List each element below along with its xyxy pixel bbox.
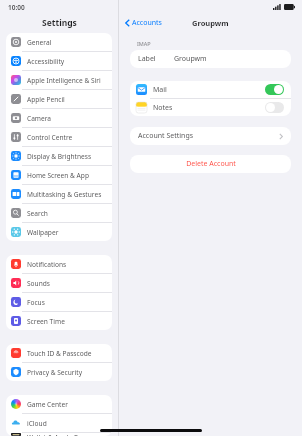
button[interactable]: Account Settings	[130, 127, 291, 145]
staticText: Camera	[27, 114, 52, 123]
staticText: iCloud	[27, 419, 47, 428]
staticText: IMAP	[137, 40, 151, 47]
button[interactable]: Mail	[130, 81, 291, 98]
staticText: Privacy & Security	[27, 368, 82, 377]
staticText: Sounds	[27, 279, 50, 288]
staticText: Accessibility	[27, 57, 65, 66]
button[interactable]: Focus	[6, 293, 112, 311]
button[interactable]: General	[6, 33, 112, 51]
staticText: Home Screen & App Library	[27, 171, 112, 180]
button[interactable]: Wallpaper	[6, 223, 112, 241]
staticText: Groupwm	[174, 54, 207, 64]
staticText: Search	[27, 209, 48, 218]
staticText: Apple Intelligence & Siri	[27, 76, 101, 85]
staticText: Wallet & Apple Pay	[27, 433, 85, 436]
staticText: Wallpaper	[27, 228, 59, 237]
staticText: Touch ID & Passcode	[27, 349, 92, 358]
staticText: Screen Time	[27, 317, 65, 326]
button[interactable]: Search	[6, 204, 112, 222]
button[interactable]: iCloud	[6, 414, 112, 432]
button[interactable]: Wallet & Apple Pay	[6, 433, 112, 436]
button[interactable]: Delete Account	[130, 155, 291, 173]
button[interactable]: Camera	[6, 109, 112, 127]
button[interactable]: Apple Intelligence & Siri	[6, 71, 112, 89]
staticText: Groupwm	[192, 18, 229, 28]
button[interactable]: Notifications	[6, 255, 112, 273]
staticText: Game Center	[27, 400, 68, 409]
button[interactable]: Accessibility	[6, 52, 112, 70]
staticText: 10:00	[8, 3, 25, 12]
button[interactable]: Mail on	[265, 84, 284, 95]
button[interactable]: Touch ID & Passcode	[6, 344, 112, 362]
staticText: Focus	[27, 298, 45, 307]
staticText: Control Centre	[27, 133, 73, 142]
staticText: Delete Account	[186, 159, 236, 169]
button[interactable]: Notes off	[265, 102, 284, 113]
staticText: General	[27, 38, 52, 47]
staticText: Notes	[153, 103, 265, 113]
button[interactable]: Screen Time	[6, 312, 112, 330]
button[interactable]: Home Screen & App Library	[6, 166, 112, 184]
staticText: Account Settings	[138, 131, 279, 141]
staticText: Display & Brightness	[27, 152, 92, 161]
staticText: Multitasking & Gestures	[27, 190, 102, 199]
staticText: Apple Pencil	[27, 95, 65, 104]
staticText: Notifications	[27, 260, 67, 269]
button[interactable]: Sounds	[6, 274, 112, 292]
button[interactable]: Display & Brightness	[6, 147, 112, 165]
button[interactable]: Apple Pencil	[6, 90, 112, 108]
staticText: Label	[138, 54, 156, 64]
staticText: Accounts	[132, 18, 162, 28]
button[interactable]: Control Centre	[6, 128, 112, 146]
staticText: Mail	[153, 85, 265, 95]
button[interactable]: Notes	[130, 99, 291, 116]
button[interactable]: Accounts	[123, 16, 164, 30]
button[interactable]: Game Center	[6, 395, 112, 413]
button[interactable]: Label	[130, 50, 291, 68]
button[interactable]: Privacy & Security	[6, 363, 112, 381]
staticText: Settings	[42, 17, 77, 29]
button[interactable]: Multitasking & Gestures	[6, 185, 112, 203]
